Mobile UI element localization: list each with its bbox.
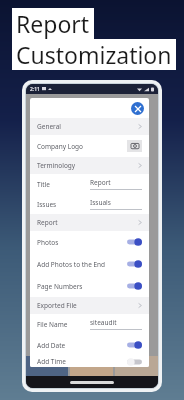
button[interactable]: Exported File [30,297,149,314]
staticText: Add Time [37,357,66,366]
button[interactable]: On [127,341,142,349]
staticText: 2:11 [30,86,40,93]
staticText: Issues [37,200,57,209]
button[interactable]: On [127,238,142,246]
button[interactable]: Add Date [30,334,149,356]
staticText: Report [16,8,90,39]
staticText: Page Numbers [37,282,83,291]
button[interactable]: Off [127,358,142,366]
staticText: Photos [37,238,59,247]
button[interactable]: Title [30,174,149,194]
staticText: Company Logo [37,142,84,151]
button[interactable]: On [127,260,142,268]
staticText: Issuals [90,198,111,207]
button[interactable]: Issues [30,194,149,214]
staticText: Report [37,218,58,227]
button[interactable]: File Name [30,314,149,334]
staticText: Add Photos to the End [37,260,106,269]
staticText: Add Date [37,341,66,350]
button[interactable]: On [127,282,142,290]
button[interactable]: Add Photos to the End [30,253,149,275]
button[interactable]: Terminology [30,157,149,174]
button[interactable]: Close [131,102,144,115]
staticText: siteaudit [90,318,117,327]
staticText: File Name [37,320,68,329]
staticText: Terminology [37,161,76,170]
staticText: Exported File [37,301,77,310]
button[interactable]: Choose logo [127,140,142,152]
staticText: Title [37,180,50,189]
staticText: General [37,122,61,131]
button[interactable]: Company Logo [30,135,149,157]
button[interactable]: Photos [30,231,149,253]
staticText: Customization [16,39,172,70]
staticText: Report [90,178,111,187]
button[interactable]: Add Time [30,356,149,367]
button[interactable]: Report [30,214,149,231]
button[interactable]: Page Numbers [30,275,149,297]
button[interactable]: General [30,118,149,135]
